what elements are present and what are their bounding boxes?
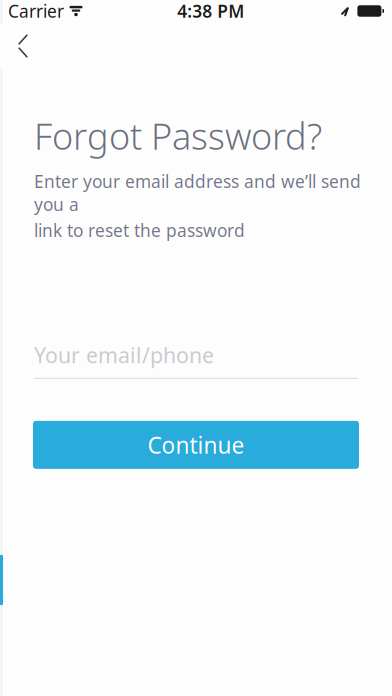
staticText: Enter your email address and we’ll send …: [34, 170, 361, 216]
button[interactable]: Continue: [33, 421, 359, 469]
staticText: 4:38 PM: [177, 0, 244, 22]
staticText: Forgot Password?: [34, 112, 322, 160]
staticText: Continue: [147, 430, 244, 460]
button[interactable]: Your email or phone: [34, 340, 358, 379]
staticText: link to reset the password: [34, 219, 245, 242]
staticText: Your email/phone: [34, 341, 214, 369]
button[interactable]: Back: [0, 24, 46, 68]
staticText: Carrier: [8, 0, 64, 22]
